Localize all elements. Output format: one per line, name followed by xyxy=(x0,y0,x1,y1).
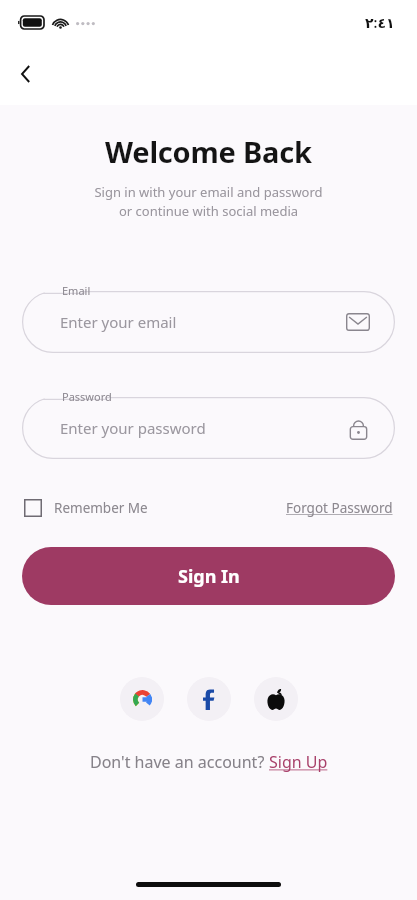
button[interactable]: Remember Me xyxy=(22,495,150,521)
staticText: Don't have an account? xyxy=(90,751,269,773)
staticText: Welcome Back xyxy=(105,132,312,171)
button[interactable]: Back xyxy=(6,54,46,94)
button[interactable]: Sign in with Facebook xyxy=(187,677,231,721)
staticText: Password xyxy=(62,389,112,404)
staticText: Sign Up xyxy=(269,751,328,773)
staticText: Sign In xyxy=(178,564,240,589)
button[interactable]: Forgot Password xyxy=(284,495,395,521)
button[interactable]: Enter your email xyxy=(22,281,395,353)
button[interactable]: Enter your password xyxy=(22,387,395,459)
button[interactable]: Sign Up xyxy=(269,751,328,773)
staticText: ٢:٤١ xyxy=(365,13,395,32)
staticText: Forgot Password xyxy=(286,499,393,517)
button[interactable]: Sign In xyxy=(22,547,395,605)
staticText: Sign in with your email and password or … xyxy=(94,183,323,220)
button[interactable]: Sign in with Google xyxy=(120,677,164,721)
staticText: Email xyxy=(62,283,91,298)
button[interactable]: Sign in with Apple xyxy=(254,677,298,721)
staticText: Enter your email xyxy=(60,312,177,332)
staticText: Enter your password xyxy=(60,418,206,438)
staticText: Remember Me xyxy=(54,499,148,517)
